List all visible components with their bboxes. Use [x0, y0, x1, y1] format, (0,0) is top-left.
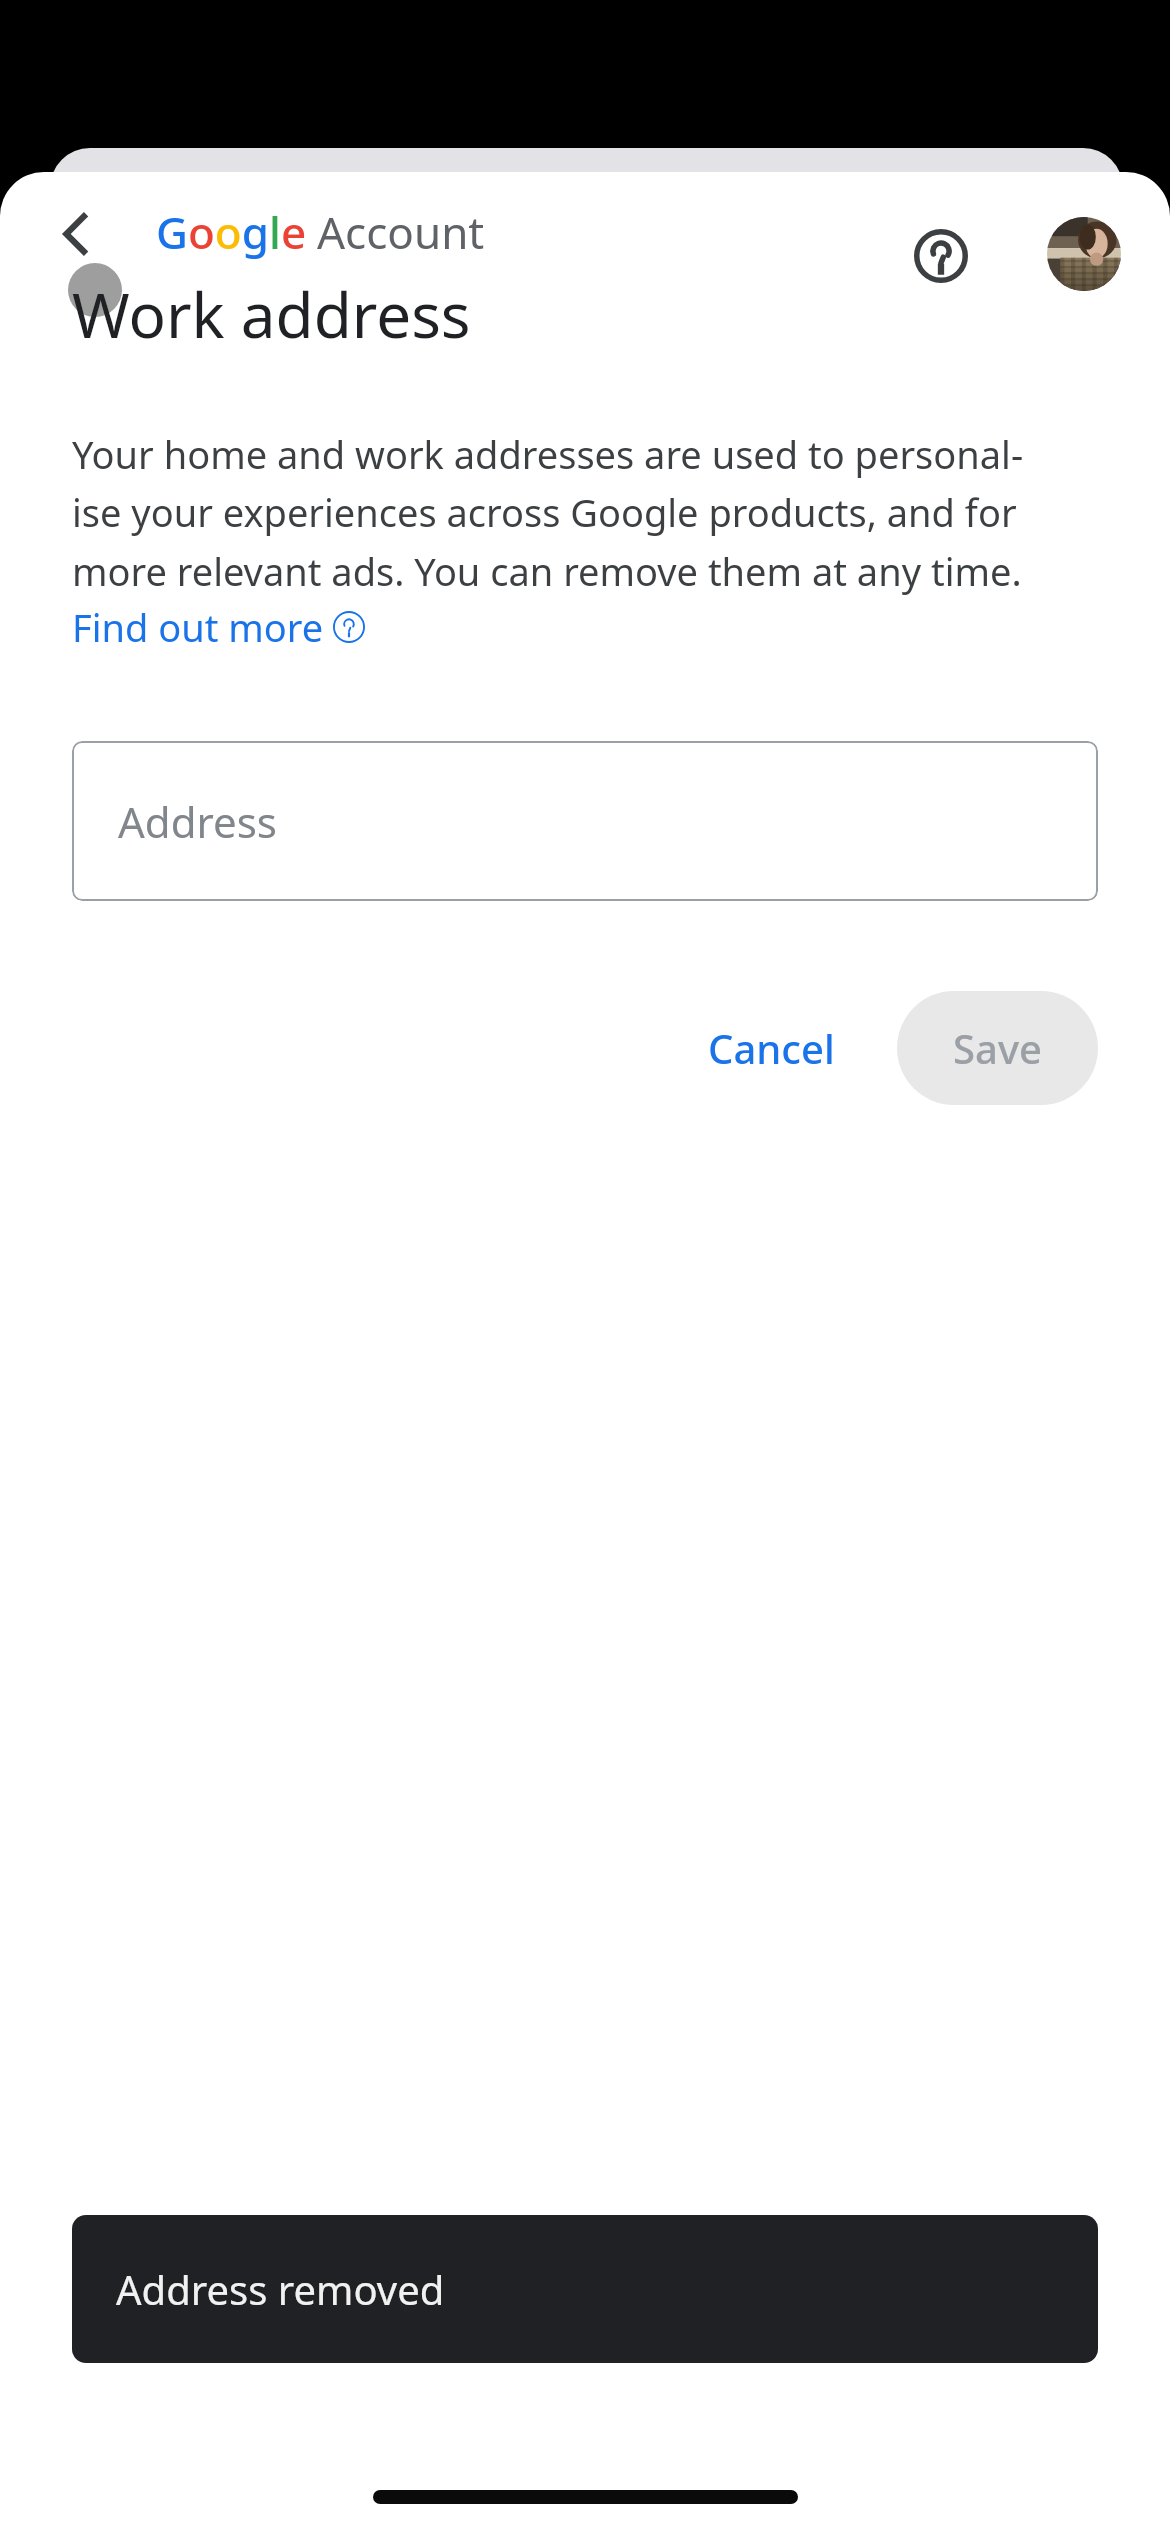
button[interactable]: Cancel — [674, 995, 869, 1101]
button[interactable]: Google Account profile — [1047, 217, 1121, 291]
staticText: Account — [317, 202, 485, 262]
button[interactable]: Back — [36, 194, 116, 274]
staticText: Work address — [72, 272, 471, 356]
button[interactable]: Address — [72, 741, 1098, 901]
staticText: Address removed — [116, 2262, 445, 2316]
button[interactable]: Find out more — [72, 601, 365, 653]
staticText: Find out more — [72, 601, 324, 653]
staticText: Save — [953, 1021, 1042, 1075]
button[interactable]: Help — [901, 216, 981, 296]
staticText: Your home and work addresses are used to… — [72, 428, 1024, 597]
staticText: Cancel — [708, 1021, 835, 1075]
button[interactable]: Save — [897, 991, 1098, 1105]
staticText: Google — [156, 202, 307, 262]
staticText: Address — [118, 793, 277, 850]
button[interactable]: Address removed — [72, 2215, 1098, 2363]
